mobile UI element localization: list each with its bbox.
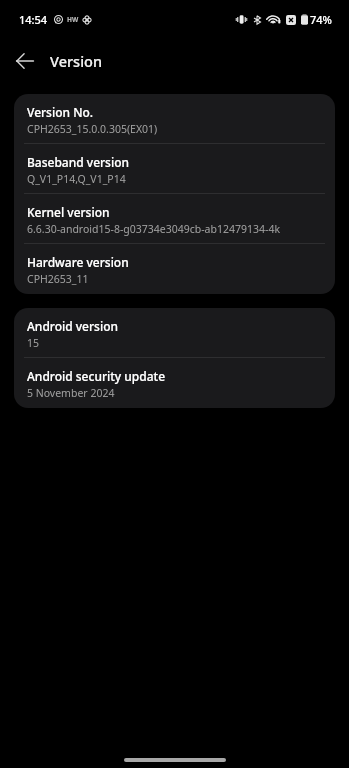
- button[interactable]: Android security update: [14, 358, 335, 408]
- staticText: Hardware version: [27, 254, 129, 270]
- staticText: Kernel version: [27, 204, 110, 220]
- staticText: Android security update: [27, 368, 166, 384]
- staticText: CPH2653_11: [27, 272, 89, 286]
- staticText: Version: [50, 51, 102, 71]
- button[interactable]: Back: [8, 43, 42, 77]
- staticText: HW: [67, 15, 79, 24]
- staticText: CPH2653_15.0.0.305(EX01): [27, 122, 158, 136]
- button[interactable]: Baseband version: [14, 144, 335, 194]
- staticText: 14:54: [19, 12, 48, 27]
- staticText: Android version: [27, 318, 119, 334]
- staticText: Q_V1_P14,Q_V1_P14: [27, 172, 126, 186]
- staticText: 74%: [310, 12, 332, 27]
- staticText: 6.6.30-android15-8-g03734e3049cb-ab12479…: [27, 222, 280, 236]
- staticText: 5 November 2024: [27, 386, 115, 400]
- staticText: Baseband version: [27, 154, 130, 170]
- staticText: Version No.: [27, 104, 94, 120]
- button[interactable]: Kernel version: [14, 194, 335, 244]
- button[interactable]: Hardware version: [14, 244, 335, 294]
- staticText: 15: [27, 336, 40, 350]
- button[interactable]: Version No.: [14, 94, 335, 144]
- button[interactable]: Android version: [14, 308, 335, 358]
